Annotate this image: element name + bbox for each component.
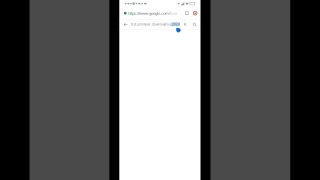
staticText: 2024 — [171, 23, 180, 26]
button[interactable]: Clear — [184, 23, 186, 26]
button[interactable]: Back — [124, 22, 128, 26]
staticText: ://www.google.com/ — [136, 10, 170, 16]
button[interactable]: https — [119, 7, 201, 19]
staticText: test.com movie downloading — [131, 23, 171, 26]
staticText: https — [128, 10, 136, 16]
staticText: sear — [170, 10, 178, 16]
button[interactable]: Search — [193, 23, 196, 26]
